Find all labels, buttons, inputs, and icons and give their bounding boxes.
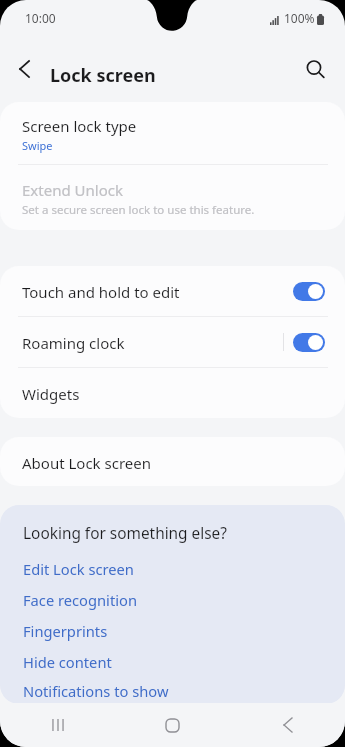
staticText: Edit Lock screen bbox=[23, 559, 134, 579]
button[interactable]: Widgets bbox=[0, 368, 345, 418]
staticText: 10:00 bbox=[25, 10, 56, 26]
button[interactable]: Roaming clock bbox=[0, 317, 345, 367]
staticText: Touch and hold to edit bbox=[22, 282, 180, 302]
button[interactable]: Fingerprints bbox=[0, 615, 345, 646]
button[interactable]: Edit Lock screen bbox=[0, 553, 345, 584]
staticText: Fingerprints bbox=[23, 621, 108, 641]
button[interactable]: Toggle on bbox=[293, 333, 325, 352]
button[interactable]: Hide content bbox=[0, 646, 345, 677]
button[interactable]: About Lock screen bbox=[0, 437, 345, 486]
staticText: 100% bbox=[284, 10, 315, 26]
button[interactable]: Toggle on bbox=[293, 282, 325, 301]
button[interactable]: Back bbox=[230, 703, 345, 747]
button[interactable]: Extend Unlock bbox=[0, 165, 345, 230]
staticText: Face recognition bbox=[23, 590, 137, 610]
staticText: Swipe bbox=[22, 138, 53, 153]
staticText: Hide content bbox=[23, 652, 112, 672]
staticText: Set a secure screen lock to use this fea… bbox=[22, 202, 255, 218]
button[interactable]: Face recognition bbox=[0, 584, 345, 615]
button[interactable]: Screen lock type bbox=[0, 102, 345, 164]
button[interactable]: Navigate up bbox=[8, 53, 40, 85]
staticText: Widgets bbox=[22, 384, 80, 404]
staticText: Notifications to show bbox=[23, 681, 169, 701]
button[interactable]: Touch and hold to edit bbox=[0, 266, 345, 316]
staticText: About Lock screen bbox=[22, 453, 151, 473]
staticText: Lock screen bbox=[50, 63, 156, 88]
staticText: Extend Unlock bbox=[22, 180, 123, 200]
staticText: Roaming clock bbox=[22, 333, 125, 353]
button[interactable]: Recent apps bbox=[0, 703, 115, 747]
staticText: Looking for something else? bbox=[23, 523, 227, 544]
staticText: Screen lock type bbox=[22, 116, 137, 136]
button[interactable]: Notifications to show bbox=[0, 677, 345, 704]
button[interactable]: Search bbox=[299, 53, 331, 85]
button[interactable]: Home bbox=[115, 703, 230, 747]
